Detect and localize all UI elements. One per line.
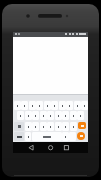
- button[interactable]: [32, 122, 39, 131]
- button[interactable]: [40, 111, 47, 120]
- button[interactable]: [66, 101, 73, 110]
- button[interactable]: [36, 101, 43, 110]
- button[interactable]: [70, 122, 77, 131]
- button[interactable]: [44, 101, 51, 110]
- button[interactable]: [55, 111, 62, 120]
- button[interactable]: [62, 111, 69, 120]
- button[interactable]: [13, 37, 88, 95]
- button[interactable]: [25, 111, 32, 120]
- button[interactable]: [47, 111, 54, 120]
- button[interactable]: [25, 122, 32, 131]
- button[interactable]: [29, 101, 36, 110]
- button[interactable]: [40, 122, 47, 131]
- button[interactable]: [14, 132, 24, 141]
- button[interactable]: [59, 142, 77, 153]
- button[interactable]: [14, 101, 21, 110]
- button[interactable]: [32, 132, 62, 141]
- button[interactable]: [23, 142, 41, 153]
- button[interactable]: [14, 122, 24, 131]
- button[interactable]: [62, 132, 69, 141]
- button[interactable]: [47, 122, 54, 131]
- button[interactable]: [41, 142, 59, 153]
- button[interactable]: [25, 132, 31, 141]
- button[interactable]: [59, 101, 66, 110]
- button[interactable]: [17, 111, 24, 120]
- button[interactable]: [62, 122, 69, 131]
- button[interactable]: [32, 111, 39, 120]
- button[interactable]: [70, 111, 77, 120]
- button[interactable]: [74, 101, 81, 110]
- button[interactable]: [78, 122, 86, 129]
- button[interactable]: [51, 101, 58, 110]
- button[interactable]: [81, 101, 88, 110]
- button[interactable]: [55, 122, 62, 131]
- button[interactable]: [21, 101, 28, 110]
- button[interactable]: [77, 111, 84, 120]
- button[interactable]: [77, 132, 85, 140]
